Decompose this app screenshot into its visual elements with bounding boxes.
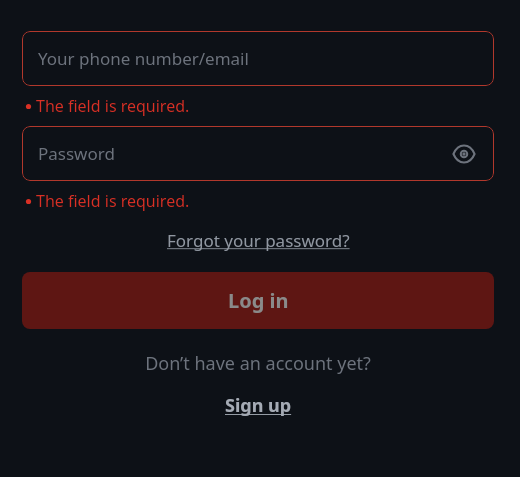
staticText: Forgot your password?	[167, 229, 350, 252]
staticText: Don’t have an account yet?	[145, 351, 371, 376]
button[interactable]: Show password	[446, 136, 482, 172]
button[interactable]: Forgot your password?	[163, 226, 354, 255]
button[interactable]: Your phone number/email	[22, 31, 494, 86]
staticText: Sign up	[225, 393, 292, 418]
staticText: The field is required.	[36, 95, 190, 117]
staticText: The field is required.	[36, 190, 190, 212]
staticText: Password	[38, 142, 115, 165]
staticText: Your phone number/email	[38, 47, 249, 70]
button[interactable]: Log in	[22, 272, 494, 329]
staticText: Log in	[228, 287, 289, 314]
button[interactable]: Sign up	[219, 390, 298, 421]
button[interactable]: Password	[22, 126, 494, 181]
